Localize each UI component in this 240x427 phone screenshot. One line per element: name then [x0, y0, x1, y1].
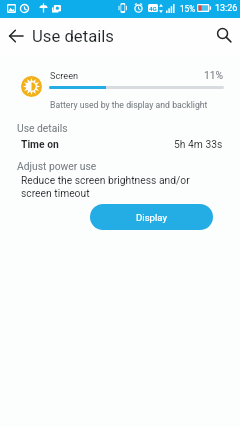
- staticText: Use details: [17, 122, 68, 134]
- staticText: Screen: [50, 70, 79, 81]
- staticText: 11%: [204, 69, 224, 81]
- staticText: Battery used by the display and backligh…: [50, 100, 208, 110]
- button[interactable]: Back: [5, 25, 27, 47]
- staticText: Display: [136, 212, 167, 223]
- button[interactable]: Search: [212, 23, 236, 47]
- staticText: 13:26: [215, 3, 238, 14]
- staticText: Reduce the screen brightness and/or scre…: [21, 174, 190, 199]
- staticText: Time on: [21, 138, 59, 150]
- button[interactable]: Display: [90, 204, 213, 230]
- staticText: Adjust power use: [17, 160, 97, 172]
- staticText: 5h 4m 33s: [174, 138, 223, 150]
- staticText: 4G: [149, 5, 157, 12]
- staticText: 15%: [180, 4, 196, 14]
- staticText: Use details: [32, 27, 114, 47]
